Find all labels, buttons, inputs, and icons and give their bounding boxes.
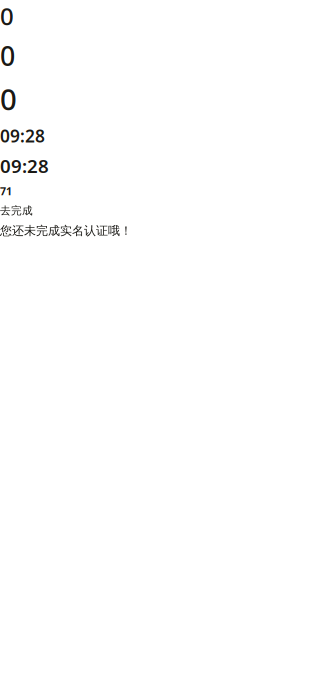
staticText: 0 (0, 38, 15, 73)
staticText: 09:28 (0, 124, 45, 147)
staticText: 去完成 (0, 204, 33, 217)
staticText: 您还未完成实名认证哦！ (0, 223, 132, 238)
staticText: 0 (0, 0, 14, 32)
staticText: 0 (0, 79, 17, 118)
staticText: 71 (0, 184, 12, 198)
staticText: 09:28 (0, 153, 49, 178)
